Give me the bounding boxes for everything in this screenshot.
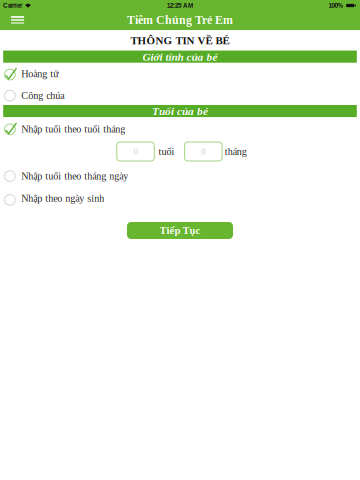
staticText: Nhập tuổi theo tuổi tháng xyxy=(21,123,125,135)
button[interactable]: Nhập theo ngày sinh xyxy=(0,187,360,211)
button[interactable]: Hoàng tử xyxy=(0,63,360,84)
staticText: 100% xyxy=(329,2,344,9)
button[interactable]: Nhập tuổi theo tuổi tháng xyxy=(0,117,360,139)
staticText: Tiếp Tục xyxy=(159,225,200,236)
staticText: 12:25 AM xyxy=(167,2,193,9)
button[interactable]: Tiếp Tục xyxy=(127,222,233,239)
button[interactable]: Nhập tuổi theo tháng ngày xyxy=(0,164,360,187)
staticText: tuổi xyxy=(159,146,175,157)
button[interactable]: Menu xyxy=(0,10,35,30)
staticText: 0 xyxy=(134,147,138,156)
button[interactable]: Công chúa xyxy=(0,84,360,105)
staticText: Tiêm Chủng Trẻ Em xyxy=(127,13,233,26)
staticText: 0 xyxy=(201,147,205,156)
staticText: tháng xyxy=(225,146,247,157)
staticText: Giới tính của bé xyxy=(142,51,217,63)
staticText: Tuổi của bé xyxy=(152,105,208,117)
staticText: Nhập theo ngày sinh xyxy=(21,193,104,204)
staticText: Công chúa xyxy=(21,90,64,101)
staticText: Carrier xyxy=(3,2,22,9)
staticText: Nhập tuổi theo tháng ngày xyxy=(21,171,128,182)
staticText: Hoàng tử xyxy=(21,68,58,79)
staticText: THÔNG TIN VỀ BÉ xyxy=(130,34,229,46)
